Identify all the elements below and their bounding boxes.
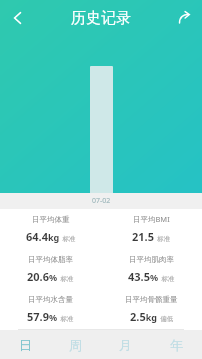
button[interactable]: Share bbox=[166, 0, 202, 36]
staticText: 历史记录 bbox=[71, 9, 131, 28]
staticText: 21.5 标准 bbox=[132, 229, 171, 244]
button[interactable]: 日 bbox=[0, 330, 50, 359]
button[interactable]: 日平均肌肉率 bbox=[101, 249, 202, 289]
staticText: 20.6% 标准 bbox=[27, 269, 74, 284]
button[interactable]: 日平均体重 bbox=[0, 209, 101, 249]
button[interactable]: 周 bbox=[50, 330, 100, 359]
button[interactable]: 日平均水含量 bbox=[0, 289, 101, 329]
staticText: 日平均体脂率 bbox=[28, 255, 73, 264]
staticText: 日平均体重 bbox=[32, 215, 70, 224]
staticText: 64.4kg 标准 bbox=[26, 229, 76, 244]
staticText: 2.5kg 偏低 bbox=[130, 309, 174, 324]
staticText: 57.9% 标准 bbox=[27, 309, 74, 324]
staticText: 日平均骨骼重量 bbox=[125, 295, 178, 304]
staticText: 日平均肌肉率 bbox=[129, 255, 174, 264]
staticText: 43.5% 标准 bbox=[128, 269, 175, 284]
staticText: 日平均水含量 bbox=[28, 295, 73, 304]
staticText: 月 bbox=[119, 337, 132, 353]
button[interactable]: Back bbox=[0, 0, 36, 36]
button[interactable]: 日平均BMI bbox=[101, 209, 202, 249]
staticText: 周 bbox=[69, 337, 82, 353]
button[interactable]: 月 bbox=[100, 330, 151, 359]
staticText: 日 bbox=[19, 337, 32, 353]
button[interactable]: 日平均骨骼重量 bbox=[101, 289, 202, 329]
staticText: 07-02 bbox=[92, 196, 111, 206]
button[interactable]: 年 bbox=[151, 330, 202, 359]
staticText: 年 bbox=[170, 337, 183, 353]
button[interactable]: 日平均体脂率 bbox=[0, 249, 101, 289]
staticText: 日平均BMI bbox=[133, 214, 170, 224]
